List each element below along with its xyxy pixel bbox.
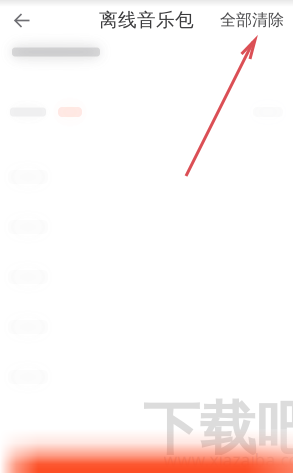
staticText: 全部清除 bbox=[220, 10, 284, 30]
button[interactable]: Back bbox=[0, 0, 44, 40]
button[interactable]: 全部清除 bbox=[220, 0, 293, 40]
button[interactable]: Download bbox=[0, 429, 293, 473]
staticText: www.xiazaiba.com bbox=[163, 448, 293, 471]
staticText: 离线音乐包 bbox=[99, 8, 194, 31]
staticText: 下载吧 bbox=[142, 394, 293, 464]
